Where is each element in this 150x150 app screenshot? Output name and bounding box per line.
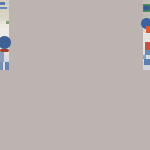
button[interactable]: Photo (0, 0, 150, 150)
button[interactable]: Previous photo (0, 0, 9, 70)
button[interactable]: Next photo (143, 0, 150, 70)
